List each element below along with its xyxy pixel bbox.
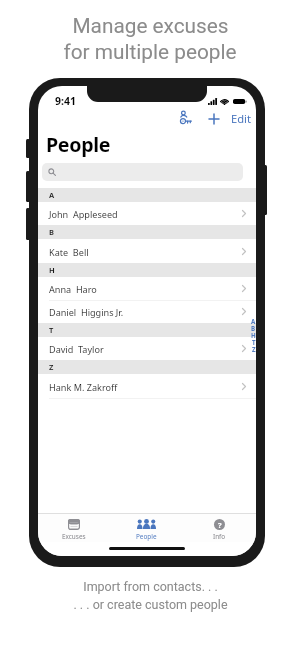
button[interactable]: Kate Bell <box>38 240 256 263</box>
staticText: B <box>251 324 256 331</box>
button[interactable]: Daniel Higgins Jr. <box>38 300 256 323</box>
button[interactable]: Excuses <box>38 514 110 541</box>
button[interactable]: Share contacts <box>178 110 193 125</box>
staticText: H <box>251 331 256 338</box>
staticText: Excuses <box>62 532 86 541</box>
staticText: Info <box>213 532 226 541</box>
button[interactable]: People <box>110 514 183 541</box>
staticText: David Taylor <box>49 343 104 355</box>
button[interactable]: Edit <box>230 111 252 126</box>
staticText: Anna Haro <box>49 283 97 295</box>
staticText: T <box>252 338 256 345</box>
staticText: H <box>49 265 55 275</box>
button[interactable] <box>42 163 243 181</box>
staticText: ? <box>218 520 222 530</box>
staticText: . . . or create custom people <box>73 597 228 612</box>
staticText: Daniel Higgins Jr. <box>49 306 124 318</box>
staticText: People <box>46 131 111 158</box>
button[interactable]: Hank M. Zakroff <box>38 375 256 398</box>
button[interactable]: David Taylor <box>38 337 256 360</box>
button[interactable]: John Appleseed <box>38 202 256 225</box>
staticText: Manage excuses <box>72 14 229 38</box>
staticText: Kate Bell <box>49 246 89 258</box>
staticText: Z <box>252 345 256 352</box>
staticText: T <box>49 325 54 335</box>
staticText: B <box>49 227 54 237</box>
button[interactable]: Anna Haro <box>38 277 256 300</box>
staticText: Z <box>49 362 54 372</box>
staticText: for multiple people <box>63 40 237 64</box>
button[interactable]: Add person <box>206 111 222 127</box>
staticText: A <box>251 317 256 324</box>
staticText: People <box>136 532 157 541</box>
staticText: 9:41 <box>55 94 76 108</box>
button[interactable]: ? <box>183 514 256 541</box>
staticText: Import from contacts. . . <box>83 579 218 594</box>
staticText: John Appleseed <box>49 208 118 220</box>
staticText: A <box>49 190 55 200</box>
staticText: Hank M. Zakroff <box>49 381 118 393</box>
staticText: Edit <box>231 111 252 126</box>
